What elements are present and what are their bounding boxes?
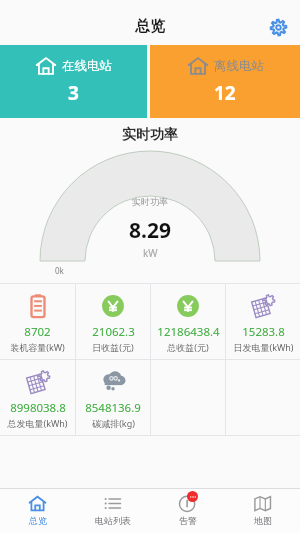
button[interactable]: 地图 [225, 489, 300, 533]
button[interactable]: 21062.3 [76, 284, 150, 359]
staticText: 电站列表 [95, 515, 131, 526]
staticText: 21062.3 [92, 324, 135, 340]
staticText: 12 [214, 80, 236, 106]
button[interactable]: 离线电站 [150, 45, 300, 118]
staticText: 3 [68, 80, 79, 106]
button[interactable]: 8548136.9 [76, 360, 150, 435]
staticText: 日收益(元) [92, 341, 134, 353]
staticText: 8702 [24, 324, 51, 340]
staticText: 15283.8 [242, 324, 285, 340]
staticText: 总发电量(kWh) [7, 417, 68, 429]
staticText: 日发电量(kWh) [233, 341, 294, 353]
staticText: 总收益(元) [167, 341, 209, 353]
staticText: 告警 [179, 515, 197, 526]
staticText: 8998038.8 [10, 400, 66, 416]
staticText: 在线电站 [62, 58, 112, 74]
staticText: 装机容量(kW) [10, 341, 65, 353]
button[interactable]: Settings [264, 13, 292, 41]
button[interactable]: 在线电站 [0, 45, 147, 118]
staticText: 8548136.9 [85, 400, 141, 416]
staticText: 离线电站 [214, 58, 264, 74]
staticText: 8.29 [129, 216, 171, 245]
staticText: 碳减排(kg) [92, 417, 135, 429]
button[interactable]: 总览 [0, 489, 75, 533]
staticText: 实时功率 [132, 196, 168, 207]
staticText: 总览 [135, 17, 165, 36]
staticText: 总览 [29, 515, 47, 526]
button[interactable]: 12186438.4 [151, 284, 225, 359]
button[interactable]: 告警 [150, 489, 225, 533]
staticText: 地图 [254, 515, 272, 526]
staticText: kW [143, 246, 158, 260]
button[interactable]: 电站列表 [75, 489, 150, 533]
button[interactable]: 8702 [0, 284, 75, 359]
staticText: 12186438.4 [157, 324, 220, 340]
button[interactable]: 15283.8 [226, 284, 300, 359]
staticText: 实时功率 [122, 126, 178, 144]
staticText: 0k [55, 265, 64, 276]
button[interactable]: 8998038.8 [0, 360, 75, 435]
